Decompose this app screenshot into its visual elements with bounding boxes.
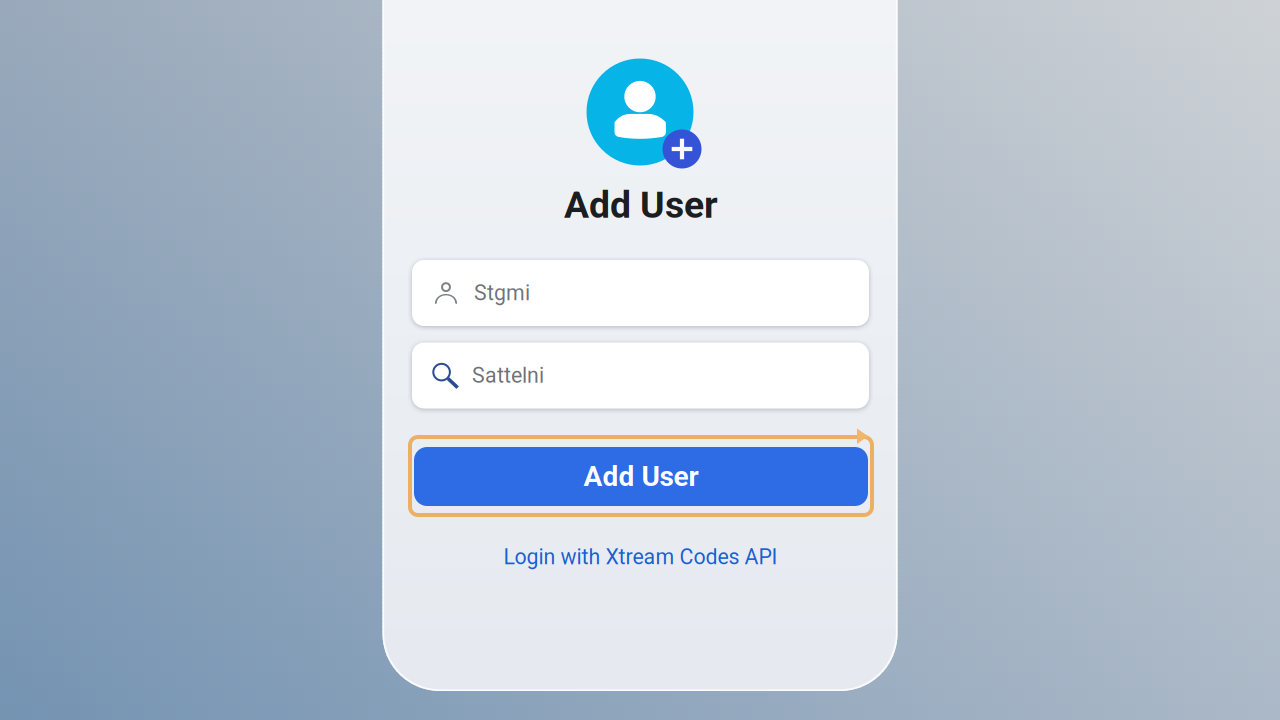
button[interactable]: Sattelni (412, 342, 869, 408)
button[interactable]: Login with Xtream Codes API (503, 544, 777, 569)
staticText: Sattelni (472, 363, 544, 388)
staticText: Login with Xtream Codes API (503, 544, 777, 569)
staticText: Add User (583, 460, 698, 493)
staticText: Add User (564, 183, 718, 227)
button[interactable]: Add User (414, 447, 868, 506)
button[interactable]: Stgmi (412, 260, 869, 326)
staticText: Stgmi (474, 280, 530, 305)
